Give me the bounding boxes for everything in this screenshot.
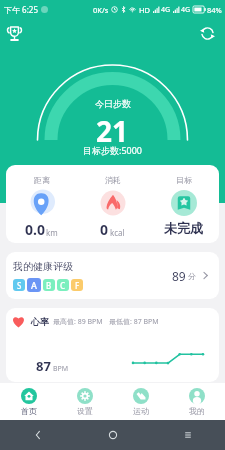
button[interactable]: 设置 xyxy=(57,388,113,416)
button[interactable]: 首页 xyxy=(0,388,57,416)
staticText: 运动 xyxy=(133,406,149,416)
staticText: 4G xyxy=(181,5,191,15)
staticText: 0K/s xyxy=(93,5,109,15)
button[interactable]: 目标 xyxy=(148,165,219,243)
button[interactable]: 运动 xyxy=(113,388,169,416)
staticText: 我的 xyxy=(189,406,205,416)
staticText: BPM xyxy=(53,364,69,374)
staticText: 最低值: 87 BPM xyxy=(109,317,159,327)
staticText: S xyxy=(17,280,22,291)
button[interactable]: 心率 xyxy=(6,308,219,382)
button[interactable]: 我的健康评级 xyxy=(6,252,219,299)
staticText: 21 xyxy=(96,112,129,150)
staticText: 89 xyxy=(172,268,186,284)
button[interactable]: Recents xyxy=(150,420,225,450)
staticText: 首页 xyxy=(21,406,37,416)
staticText: 分 xyxy=(188,271,196,281)
button[interactable]: 消耗 xyxy=(77,165,148,243)
staticText: 未完成 xyxy=(164,220,203,236)
staticText: 距离 xyxy=(34,175,50,185)
staticText: km xyxy=(46,227,58,238)
staticText: 最高值: 89 BPM xyxy=(53,317,103,327)
staticText: 0.0 xyxy=(25,220,45,239)
staticText: 我的健康评级 xyxy=(13,260,73,273)
staticText: 设置 xyxy=(77,406,93,416)
staticText: 今日步数 xyxy=(95,98,131,109)
staticText: 目标 xyxy=(176,175,192,185)
staticText: 目标步数:5000 xyxy=(83,144,143,156)
button[interactable]: 距离 xyxy=(6,165,77,243)
staticText: 0 xyxy=(100,220,109,239)
staticText: HD xyxy=(139,5,151,15)
staticText: B xyxy=(46,280,52,291)
button[interactable]: Home xyxy=(75,420,150,450)
button[interactable]: Back xyxy=(0,420,75,450)
staticText: kcal xyxy=(110,227,125,238)
staticText: A xyxy=(31,279,37,291)
staticText: 消耗 xyxy=(105,175,121,185)
staticText: 下午 6:25 xyxy=(4,4,38,15)
staticText: F xyxy=(75,280,80,291)
button[interactable]: 我的 xyxy=(169,388,225,416)
button[interactable]: Sync xyxy=(193,19,221,47)
staticText: 心率 xyxy=(31,316,49,327)
staticText: 84% xyxy=(207,5,222,15)
staticText: 4G xyxy=(161,5,171,15)
staticText: C xyxy=(60,280,66,291)
staticText: 87 xyxy=(36,357,51,375)
button[interactable]: Achievements xyxy=(0,19,28,47)
